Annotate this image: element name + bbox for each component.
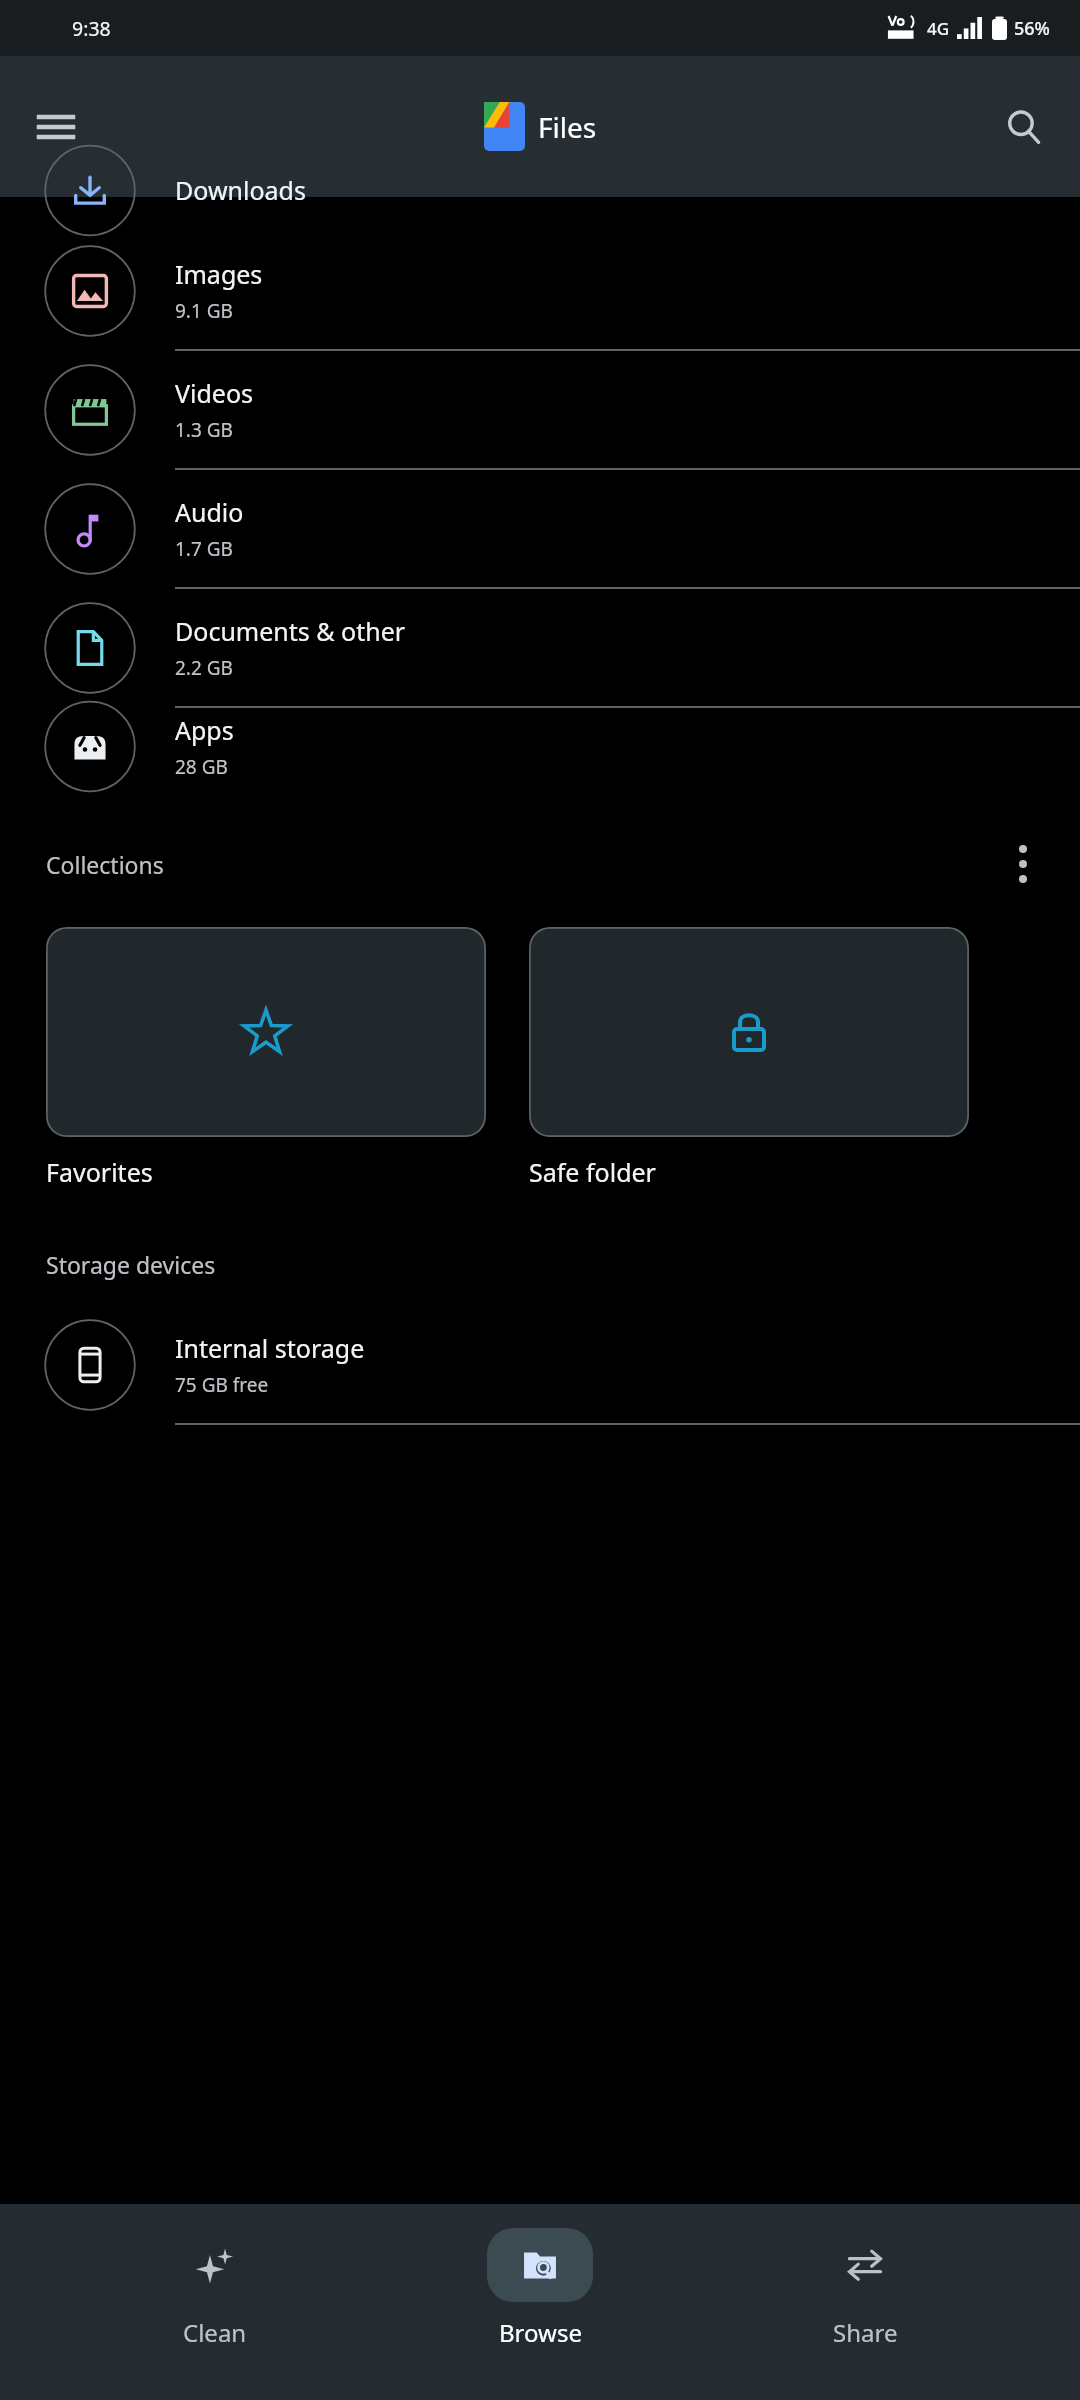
button[interactable]: More options (990, 831, 1056, 897)
button[interactable] (529, 927, 969, 1137)
button[interactable]: Internal storage (0, 1306, 1080, 1425)
staticText: 9.1 GB (175, 298, 233, 324)
staticText: 4G (927, 17, 950, 40)
button[interactable]: Images (0, 232, 1080, 351)
button[interactable]: Menu (16, 87, 96, 167)
staticText: 28 GB (175, 754, 228, 780)
staticText: Safe folder (529, 1155, 656, 1189)
button[interactable]: Videos (0, 351, 1080, 470)
button[interactable]: Downloads (0, 173, 1080, 208)
staticText: 1.3 GB (175, 417, 233, 443)
staticText: 2.2 GB (175, 655, 233, 681)
staticText: 9:38 (72, 15, 111, 42)
button[interactable]: Browse (430, 2228, 650, 2349)
button[interactable] (46, 927, 486, 1137)
staticText: Internal storage (175, 1331, 365, 1365)
staticText: Downloads (175, 173, 306, 207)
staticText: 75 GB free (175, 1372, 269, 1398)
staticText: Collections (46, 849, 164, 880)
staticText: Browse (499, 2316, 582, 2349)
button[interactable]: Audio (0, 470, 1080, 589)
staticText: Clean (183, 2316, 247, 2349)
button[interactable]: Downloads (0, 197, 1080, 232)
staticText: Images (175, 257, 263, 291)
button[interactable]: Apps (0, 708, 1080, 785)
staticText: Favorites (46, 1155, 153, 1189)
button[interactable]: Documents & other (0, 589, 1080, 708)
staticText: 1.7 GB (175, 536, 233, 562)
staticText: 56% (1014, 16, 1050, 41)
button[interactable]: Share (755, 2228, 975, 2349)
staticText: Audio (175, 495, 244, 529)
staticText: Apps (175, 713, 234, 747)
staticText: Files (538, 108, 597, 146)
staticText: Documents & other (175, 614, 406, 648)
button[interactable]: Clean (105, 2228, 325, 2349)
staticText: Share (833, 2316, 898, 2349)
button[interactable]: Search (984, 87, 1064, 167)
staticText: Videos (175, 376, 254, 410)
staticText: Storage devices (46, 1249, 216, 1280)
